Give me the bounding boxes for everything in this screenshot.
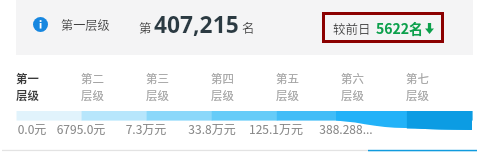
staticText: 名 [242,18,255,36]
staticText: 较前日 [333,19,371,37]
staticText: 第一层级 [61,16,110,34]
staticText: 第三 [146,70,169,87]
staticText: 第五 [276,70,299,87]
staticText: 125.1万元 [236,120,316,137]
staticText: 第一 [16,70,39,87]
button[interactable]: 信息 [33,17,48,32]
staticText: 第 [139,18,152,36]
staticText: 层级 [211,87,234,104]
staticText: 0.0元 [0,120,72,137]
staticText: 第七 [406,70,429,87]
button[interactable]: 较前日 [325,15,441,40]
staticText: 第六 [341,70,364,87]
staticText: 层级 [81,87,104,104]
staticText: 第二 [81,70,104,87]
staticText: 407,215 [154,9,239,40]
staticText: 层级 [276,87,299,104]
staticText: 层级 [16,87,39,104]
staticText: 层级 [146,87,169,104]
staticText: 5622名 [376,18,424,38]
staticText: 第四 [211,70,234,87]
staticText: 33.8万元 [172,120,252,137]
staticText: 层级 [341,87,364,104]
staticText: 6795.0元 [41,120,121,137]
staticText: 388.288... [306,120,386,137]
staticText: 层级 [406,87,429,104]
staticText: 7.3万元 [106,120,186,137]
